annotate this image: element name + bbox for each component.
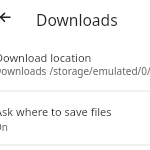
staticText: Downloads <box>0 64 47 78</box>
staticText: Downloads <box>36 9 118 30</box>
button[interactable]: Download location <box>0 44 150 86</box>
staticText: On <box>0 120 8 134</box>
staticText: /storage/emulated/0/ <box>47 64 150 78</box>
staticText: Ask where to save files <box>0 104 112 119</box>
button[interactable]: Back <box>0 5 18 29</box>
button[interactable]: Ask where to save files <box>0 98 150 140</box>
staticText: Download location <box>0 50 92 65</box>
